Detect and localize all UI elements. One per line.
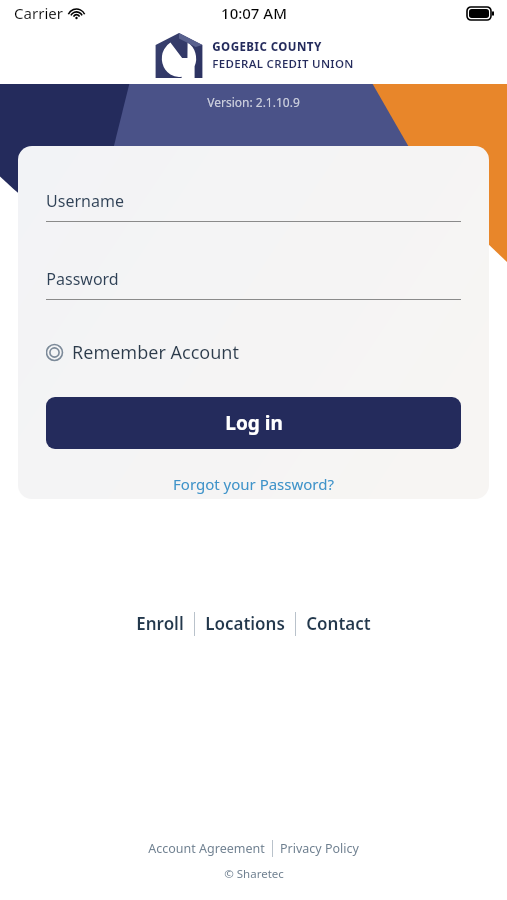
button[interactable]: Enroll (126, 607, 194, 640)
button[interactable]: Privacy Policy (273, 837, 366, 860)
button[interactable]: Log in (46, 397, 461, 449)
staticText: Privacy Policy (280, 840, 359, 857)
staticText: © Sharetec (224, 866, 284, 882)
staticText: Remember Account (72, 340, 239, 365)
staticText: Carrier (14, 3, 63, 23)
staticText: Enroll (136, 612, 184, 635)
staticText: Account Agreement (148, 840, 265, 857)
staticText: Contact (306, 612, 371, 635)
button[interactable]: Password (46, 268, 461, 300)
staticText: 10:07 AM (221, 3, 287, 23)
button[interactable]: Username (46, 190, 461, 222)
button[interactable]: Locations (195, 607, 295, 640)
button[interactable]: Contact (296, 607, 381, 640)
staticText: Forgot your Password? (173, 474, 334, 494)
button[interactable]: Account Agreement (141, 837, 272, 860)
staticText: Locations (205, 612, 285, 635)
staticText: Version: 2.1.10.9 (207, 94, 300, 110)
staticText: FEDERAL CREDIT UNION (212, 56, 354, 72)
staticText: Log in (225, 410, 283, 436)
button[interactable]: Remember Account (46, 338, 239, 367)
staticText: Username (46, 190, 124, 212)
button[interactable]: Forgot your Password? (167, 471, 340, 497)
staticText: Password (46, 268, 119, 290)
staticText: GOGEBIC COUNTY (212, 39, 322, 55)
